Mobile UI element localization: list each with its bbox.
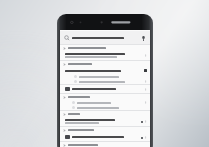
button[interactable]: Search — [63, 34, 70, 41]
button[interactable] — [60, 79, 150, 84]
button[interactable] — [60, 94, 150, 100]
button[interactable] — [60, 111, 150, 117]
button[interactable]: Attachment — [60, 133, 150, 141]
button[interactable] — [60, 105, 150, 110]
button[interactable] — [60, 117, 150, 126]
button[interactable]: Search — [60, 31, 150, 44]
button[interactable] — [60, 142, 150, 147]
button[interactable] — [60, 100, 150, 105]
button[interactable] — [60, 74, 150, 79]
button[interactable] — [60, 67, 150, 74]
button[interactable] — [60, 127, 150, 133]
button[interactable]: Account — [139, 34, 147, 42]
other: Attachment — [65, 87, 70, 91]
button[interactable]: Attachment — [60, 85, 150, 93]
button[interactable] — [60, 45, 150, 51]
other: Attachment — [65, 135, 70, 139]
button[interactable] — [60, 51, 150, 60]
button[interactable] — [60, 61, 150, 67]
